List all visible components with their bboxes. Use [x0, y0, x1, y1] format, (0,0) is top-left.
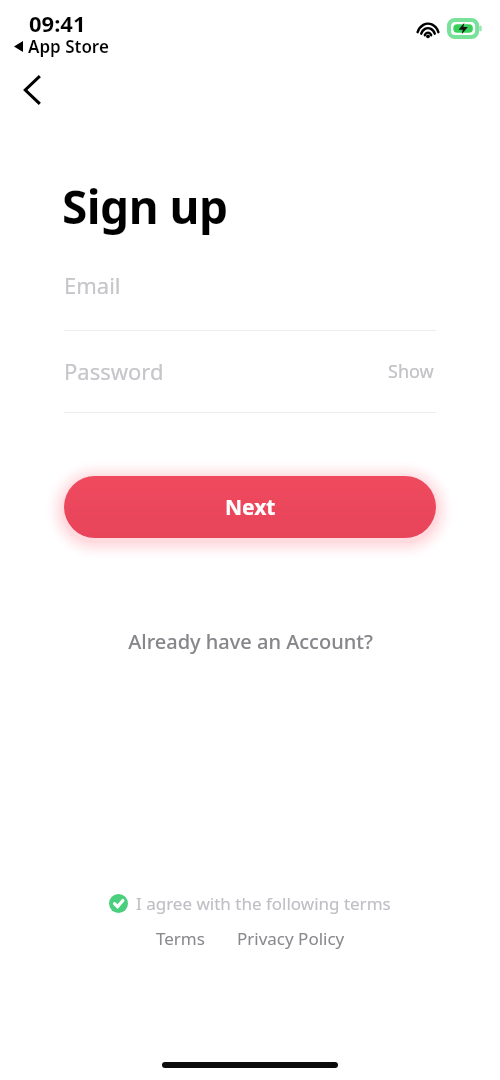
button[interactable]: Privacy Policy: [232, 925, 350, 952]
other: Battery charging: [449, 20, 481, 37]
button[interactable]: Back: [10, 68, 54, 112]
button[interactable]: Next: [64, 476, 436, 538]
button[interactable]: Password: [64, 356, 436, 413]
staticText: Next: [225, 493, 276, 522]
staticText: Terms: [156, 927, 205, 950]
staticText: App Store: [28, 35, 109, 58]
staticText: Already have an Account?: [128, 628, 373, 655]
staticText: Privacy Policy: [237, 927, 345, 950]
button[interactable]: Show: [386, 357, 436, 386]
button[interactable]: App Store: [12, 34, 111, 59]
staticText: Email: [64, 270, 121, 300]
staticText: Sign up: [62, 175, 228, 238]
other: Wi-Fi: [416, 20, 440, 38]
staticText: I agree with the following terms: [136, 892, 391, 915]
staticText: 09:41: [29, 8, 86, 38]
button[interactable]: Terms: [151, 925, 210, 952]
staticText: Password: [64, 356, 164, 386]
staticText: Show: [388, 359, 434, 384]
button[interactable]: I agree with the following terms: [105, 890, 395, 917]
button[interactable]: Email: [64, 270, 436, 331]
button[interactable]: Already have an Account?: [118, 624, 383, 659]
